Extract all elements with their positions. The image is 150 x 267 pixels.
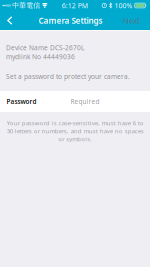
button[interactable]: Password: [0, 91, 150, 112]
staticText: 6:12 PM: [62, 1, 88, 10]
staticText: Camera Settings: [38, 15, 102, 26]
staticText: Your password is case-sensitive, must ha…: [6, 119, 143, 143]
button[interactable]: Back: [0, 11, 19, 30]
staticText: Set a password to protect your camera.: [6, 72, 130, 81]
staticText: Device Name DCS-2670L mydlink No 4444903…: [6, 43, 84, 61]
staticText: 中華電信: [12, 1, 40, 10]
staticText: Password: [6, 97, 36, 106]
staticText: Required: [70, 97, 99, 106]
button[interactable]: Next: [118, 11, 150, 30]
staticText: Next: [123, 15, 140, 26]
staticText: 100%: [115, 1, 133, 10]
